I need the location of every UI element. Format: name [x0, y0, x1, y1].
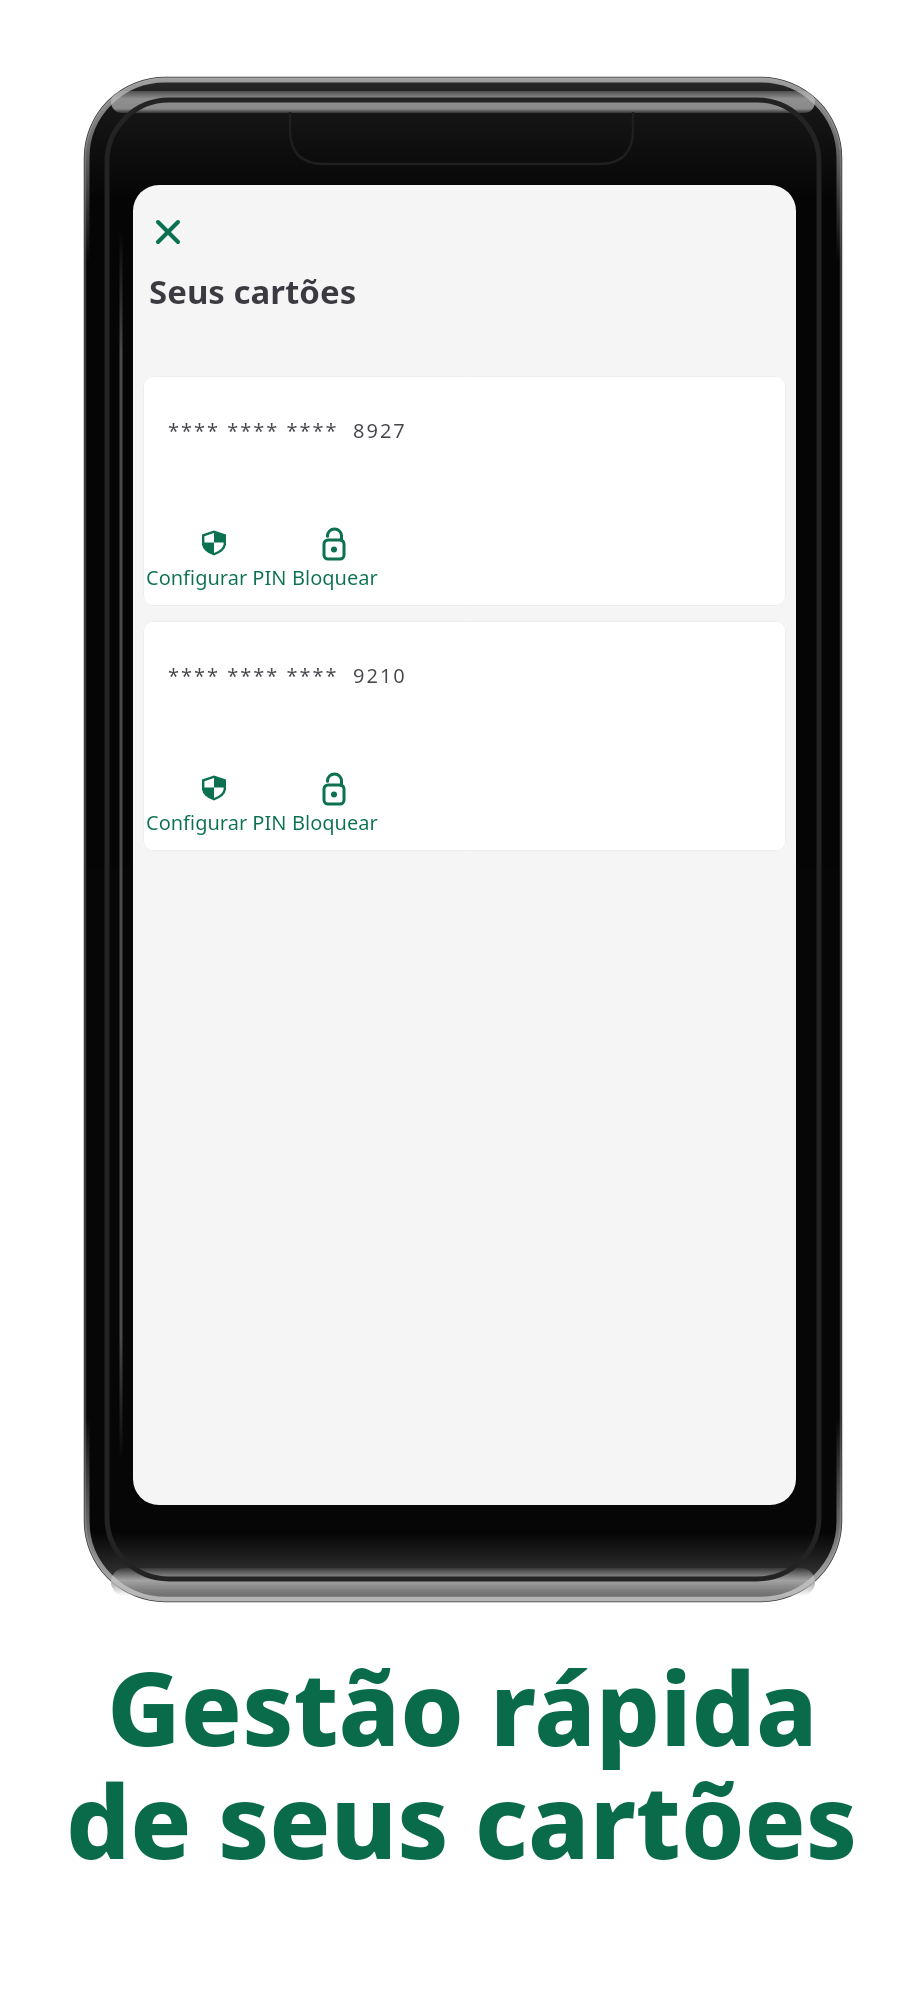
- button[interactable]: [147, 211, 189, 253]
- staticText: Bloquear: [292, 809, 378, 836]
- button[interactable]: Bloquear: [289, 761, 379, 841]
- button[interactable]: Configurar PIN: [143, 516, 288, 596]
- staticText: **** **** **** 9210: [168, 662, 407, 689]
- staticText: Configurar PIN: [146, 564, 287, 591]
- button[interactable]: **** **** **** 9210: [143, 621, 786, 851]
- staticText: de seus cartões: [66, 1751, 858, 1889]
- button[interactable]: Bloquear: [289, 516, 379, 596]
- button[interactable]: Configurar PIN: [143, 761, 288, 841]
- staticText: Configurar PIN: [146, 809, 287, 836]
- button[interactable]: **** **** **** 8927: [143, 376, 786, 606]
- staticText: Gestão rápida: [107, 1638, 818, 1776]
- staticText: Bloquear: [292, 564, 378, 591]
- staticText: **** **** **** 8927: [168, 417, 407, 444]
- staticText: Seus cartões: [149, 269, 357, 314]
